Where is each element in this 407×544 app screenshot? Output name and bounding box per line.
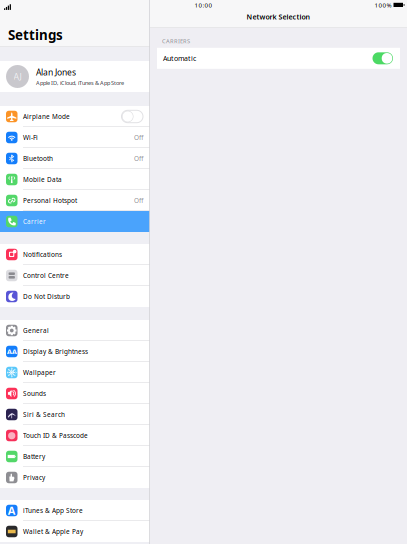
staticText: Settings (8, 26, 63, 44)
staticText: Off (134, 154, 143, 163)
staticText: A (8, 503, 16, 518)
button[interactable]: Wallpaper (0, 362, 150, 383)
staticText: Sounds (23, 389, 46, 398)
button[interactable]: Do Not Disturb (0, 286, 150, 307)
staticText: 100% (374, 1, 391, 9)
button[interactable]: General (0, 320, 150, 341)
staticText: Bluetooth (23, 154, 53, 163)
button[interactable]: Sounds (0, 383, 150, 404)
staticText: Off (134, 133, 143, 142)
button[interactable]: Notifications (0, 244, 150, 265)
button[interactable]: Mobile Data (0, 169, 150, 190)
staticText: General (23, 326, 49, 335)
staticText: Privacy (23, 473, 45, 482)
staticText: Notifications (23, 250, 62, 259)
button[interactable]: Carrier (0, 211, 150, 232)
staticText: Automatic (163, 54, 196, 63)
staticText: Network Selection (246, 12, 310, 22)
button[interactable]: Wallet & Apple Pay (0, 521, 150, 542)
button[interactable]: Siri & Search (0, 404, 150, 425)
staticText: Carrier (23, 217, 46, 226)
button[interactable]: Automatic (157, 48, 400, 69)
staticText: Siri & Search (23, 410, 65, 419)
button[interactable]: Control Centre (0, 265, 150, 286)
button[interactable]: Touch ID & Passcode (0, 425, 150, 446)
staticText: AJ (13, 71, 21, 82)
button[interactable]: Airplane Mode (0, 106, 150, 127)
staticText: Touch ID & Passcode (23, 431, 88, 440)
staticText: Airplane Mode (23, 112, 70, 121)
staticText: Wallpaper (23, 368, 56, 377)
staticText: Alan Jones (36, 66, 76, 78)
button[interactable]: A (0, 500, 150, 521)
staticText: Apple ID, iCloud, iTunes & App Store (36, 79, 124, 87)
staticText: Mobile Data (23, 175, 62, 184)
staticText: 10:00 (194, 1, 212, 9)
button[interactable]: AA (0, 341, 150, 362)
staticText: iTunes & App Store (23, 506, 83, 515)
staticText: CARRIERS (162, 37, 190, 45)
staticText: Personal Hotspot (23, 196, 77, 205)
staticText: Do Not Disturb (23, 292, 70, 301)
button[interactable]: Privacy (0, 467, 150, 488)
staticText: Wi-Fi (23, 133, 38, 142)
staticText: Display & Brightness (23, 347, 88, 356)
button[interactable]: Battery (0, 446, 150, 467)
button[interactable]: Wi-Fi (0, 127, 150, 148)
staticText: Battery (23, 452, 45, 461)
staticText: Off (134, 196, 143, 205)
button[interactable]: Bluetooth (0, 148, 150, 169)
staticText: Wallet & Apple Pay (23, 527, 83, 536)
button[interactable]: AJ (0, 61, 150, 92)
button[interactable]: Personal Hotspot (0, 190, 150, 211)
staticText: Control Centre (23, 271, 69, 280)
staticText: AA (7, 346, 17, 357)
